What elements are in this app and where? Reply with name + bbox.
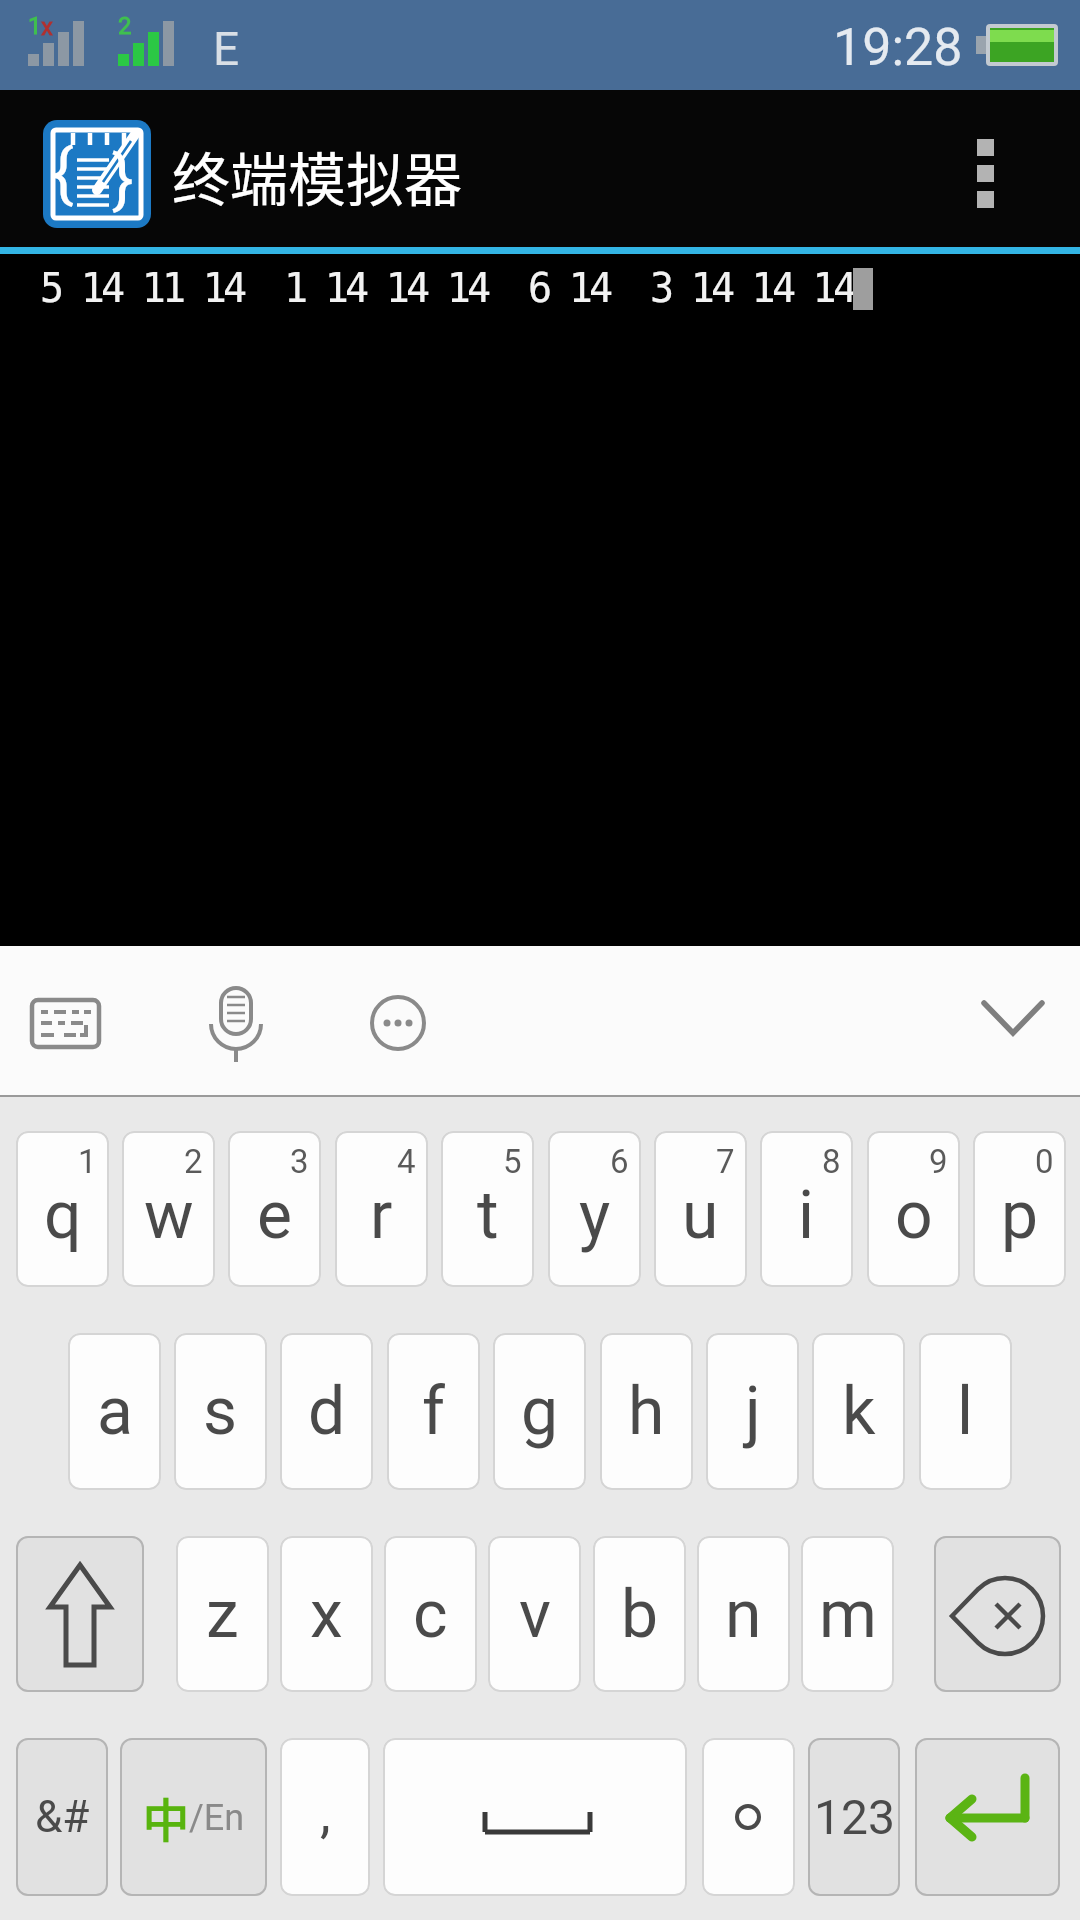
staticText: 123 [814, 1789, 895, 1845]
button[interactable]: 中 [120, 1738, 267, 1896]
button[interactable] [934, 1536, 1061, 1692]
staticText: w [144, 1177, 194, 1254]
staticText: v [519, 1576, 551, 1653]
button[interactable]: v [488, 1536, 581, 1692]
staticText: l [957, 1373, 974, 1450]
button[interactable]: m [801, 1536, 894, 1692]
staticText: , [320, 1782, 331, 1845]
button[interactable] [370, 995, 426, 1051]
staticText: u [682, 1177, 719, 1254]
button[interactable]: d [280, 1333, 373, 1490]
button[interactable]: l [919, 1333, 1012, 1490]
staticText: 8 [822, 1142, 841, 1181]
staticText: c [413, 1576, 448, 1653]
button[interactable] [205, 980, 267, 1068]
staticText: 1 [28, 12, 42, 40]
staticText: k [842, 1373, 876, 1450]
staticText: b [621, 1576, 659, 1653]
staticText: 0 [1035, 1142, 1054, 1181]
staticText: 中 [143, 1784, 189, 1851]
staticText: r [370, 1177, 393, 1254]
staticText: o [895, 1177, 933, 1254]
button[interactable] [950, 110, 1030, 230]
staticText: 5 [503, 1142, 522, 1181]
button[interactable] [30, 997, 102, 1051]
staticText: { [52, 136, 74, 211]
staticText: } [112, 142, 134, 217]
button[interactable]: e [228, 1131, 321, 1287]
button[interactable]: g [493, 1333, 586, 1490]
button[interactable]: k [812, 1333, 905, 1490]
button[interactable]: i [760, 1131, 853, 1287]
button[interactable] [383, 1738, 687, 1896]
staticText: 5 14 11 14 1 14 14 14 6 14 3 14 14 14 [40, 265, 854, 312]
button[interactable]: p [973, 1131, 1066, 1287]
button[interactable]: a [68, 1333, 161, 1490]
staticText: 3 [290, 1142, 309, 1181]
button[interactable] [980, 995, 1046, 1045]
button[interactable]: x [280, 1536, 373, 1692]
staticText: 7 [716, 1142, 735, 1181]
staticText: g [521, 1373, 559, 1450]
button[interactable]: b [593, 1536, 686, 1692]
staticText: 4 [397, 1142, 416, 1181]
staticText: d [308, 1373, 346, 1450]
button[interactable] [702, 1738, 795, 1896]
button[interactable]: q [16, 1131, 109, 1287]
staticText: y [579, 1177, 611, 1254]
staticText: E [213, 22, 240, 76]
staticText: x [41, 13, 53, 41]
staticText: m [819, 1576, 877, 1653]
staticText: j [745, 1373, 761, 1450]
staticText: /En [189, 1797, 245, 1839]
staticText: t [477, 1177, 499, 1254]
staticText: 1 [78, 1142, 97, 1181]
button[interactable]: z [176, 1536, 269, 1692]
button[interactable]: f [387, 1333, 480, 1490]
staticText: 终端模拟器 [172, 134, 463, 218]
button[interactable]: h [600, 1333, 693, 1490]
staticText: f [422, 1373, 445, 1450]
button[interactable]: j [706, 1333, 799, 1490]
staticText: a [97, 1373, 133, 1450]
staticText: s [203, 1373, 238, 1450]
staticText: 6 [610, 1142, 629, 1181]
staticText: z [206, 1576, 239, 1653]
staticText: x [310, 1576, 343, 1653]
button[interactable]: o [867, 1131, 960, 1287]
staticText: n [725, 1576, 762, 1653]
staticText: 2 [184, 1142, 203, 1181]
staticText: 9 [929, 1142, 948, 1181]
button[interactable]: y [548, 1131, 641, 1287]
button[interactable] [16, 1536, 144, 1692]
button[interactable] [915, 1738, 1060, 1896]
staticText: h [628, 1373, 665, 1450]
staticText: 2 [118, 12, 132, 40]
button[interactable]: , [280, 1738, 370, 1896]
button[interactable]: c [384, 1536, 477, 1692]
staticText: i [798, 1177, 815, 1254]
staticText: p [1001, 1177, 1039, 1254]
button[interactable]: u [654, 1131, 747, 1287]
staticText: &# [35, 1791, 90, 1843]
staticText: q [44, 1177, 82, 1254]
button[interactable]: w [122, 1131, 215, 1287]
button[interactable]: r [335, 1131, 428, 1287]
button[interactable]: t [441, 1131, 534, 1287]
button[interactable]: &# [16, 1738, 108, 1896]
button[interactable]: n [697, 1536, 790, 1692]
button[interactable]: 123 [808, 1738, 900, 1896]
staticText: 19:28 [833, 17, 963, 78]
button[interactable]: s [174, 1333, 267, 1490]
staticText: e [257, 1177, 292, 1254]
